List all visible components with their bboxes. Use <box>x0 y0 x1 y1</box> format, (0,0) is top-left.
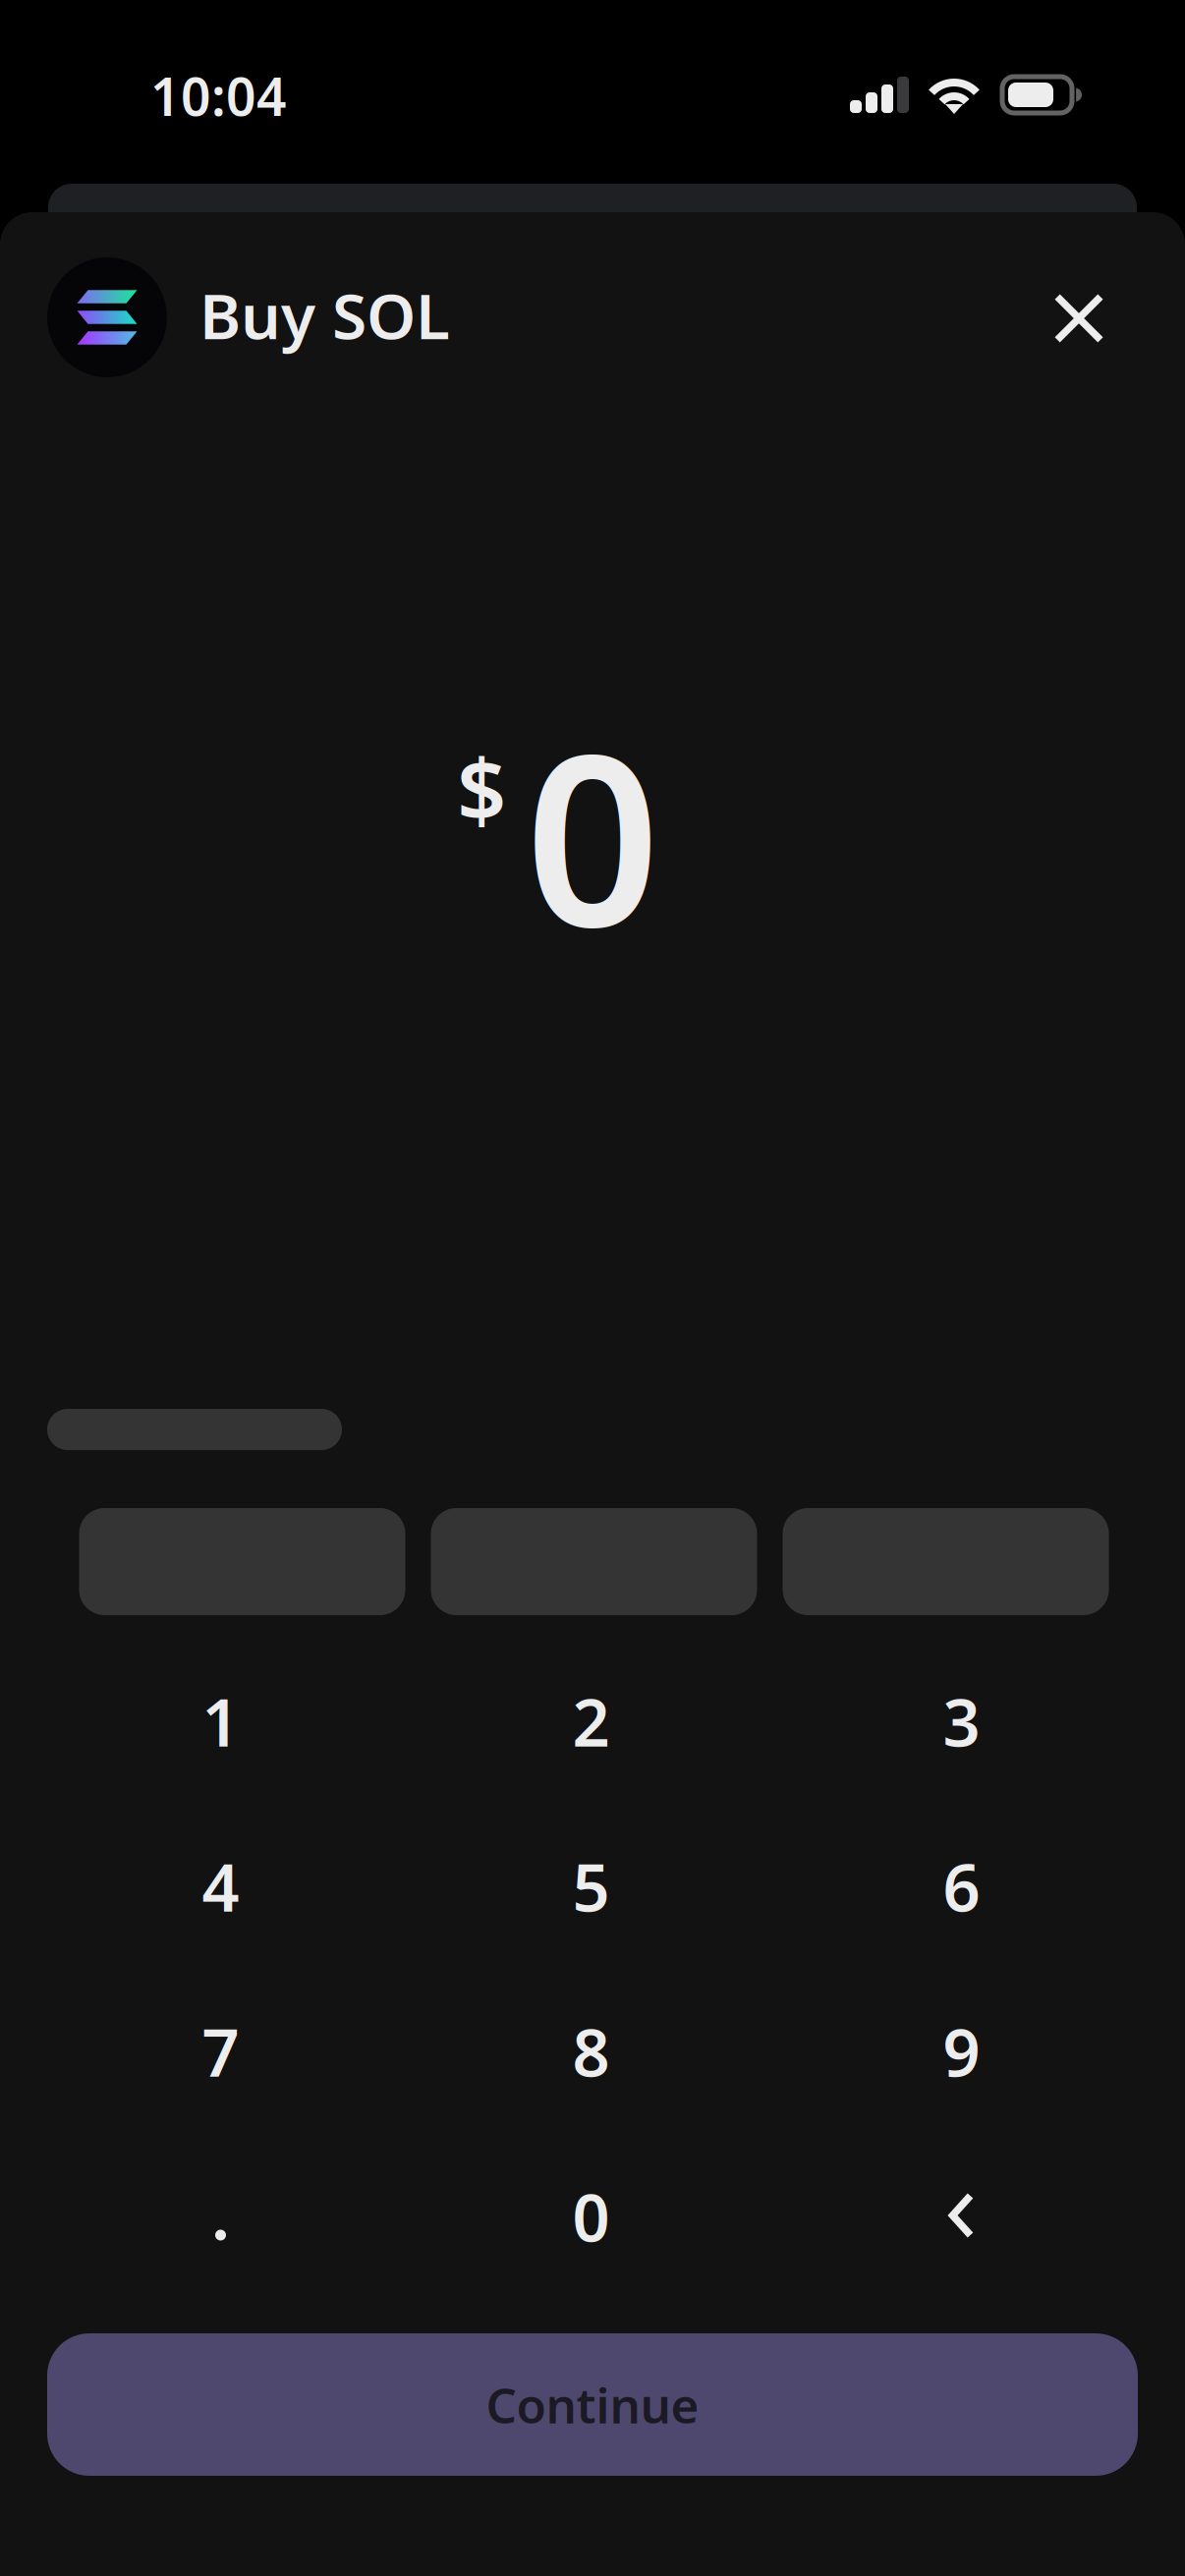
button[interactable]: 8 <box>406 1969 776 2134</box>
button[interactable]: 7 <box>35 1969 406 2134</box>
button[interactable]: Delete <box>776 2134 1147 2299</box>
staticText: Continue <box>486 2372 699 2437</box>
button[interactable]: 2 <box>406 1639 776 1804</box>
staticText: 9 <box>943 2008 980 2095</box>
button[interactable]: 3 <box>776 1639 1147 1804</box>
button[interactable]: Close <box>1032 271 1126 365</box>
button[interactable]: 4 <box>35 1804 406 1969</box>
staticText: 6 <box>943 1843 980 1930</box>
button[interactable]: 0 <box>406 2134 776 2299</box>
button[interactable]: 5 <box>406 1804 776 1969</box>
staticText: 3 <box>943 1678 980 1765</box>
button[interactable]: 9 <box>776 1969 1147 2134</box>
staticText: 2 <box>572 1678 610 1765</box>
button[interactable]: Continue <box>47 2333 1138 2476</box>
staticText: 8 <box>572 2008 610 2095</box>
staticText: 7 <box>202 2008 239 2095</box>
button[interactable]: Preset amount <box>431 1508 757 1615</box>
staticText: 0 <box>572 2173 610 2260</box>
staticText: Buy SOL <box>199 273 450 357</box>
staticText: $ <box>457 731 506 846</box>
staticText: 4 <box>202 1843 239 1930</box>
staticText: 5 <box>572 1843 610 1930</box>
staticText: 0 <box>525 678 660 992</box>
button[interactable]: 1 <box>35 1639 406 1804</box>
staticText: 1 <box>202 1678 239 1765</box>
staticText: 10:04 <box>150 61 287 130</box>
button[interactable]: Preset amount <box>783 1508 1109 1615</box>
button[interactable]: 6 <box>776 1804 1147 1969</box>
button[interactable]: Decimal point <box>35 2134 406 2299</box>
button[interactable]: Preset amount <box>79 1508 405 1615</box>
